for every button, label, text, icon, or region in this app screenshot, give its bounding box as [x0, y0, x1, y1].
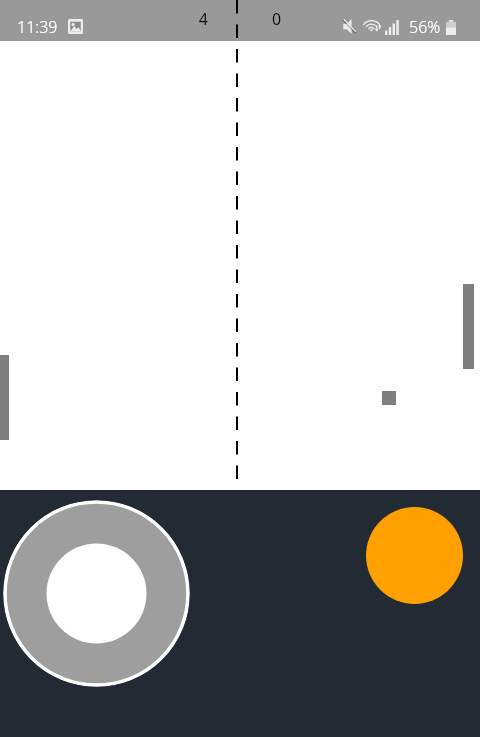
staticText: 0 [272, 8, 314, 30]
staticText: 11:39 [17, 16, 58, 38]
button[interactable]: Start game [366, 507, 463, 604]
button[interactable]: Joystick, move paddle [3, 500, 190, 687]
staticText: 4 [166, 8, 208, 30]
staticText: 56% [409, 16, 441, 38]
